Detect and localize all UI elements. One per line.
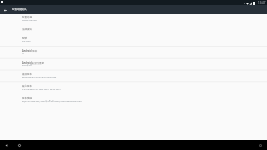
staticText: g845-00046-210127-B-7169123456 [22,76,57,79]
button[interactable]: Screenshot [257,142,263,148]
staticText: RQ2A.210405.005, 2021年4月5日 build, user-r… [22,100,82,103]
button[interactable]: 裝置名稱 [0,14,267,26]
staticText: SM-T720 [22,40,31,43]
button[interactable]: Back [2,7,8,13]
button[interactable]: 法律資訊 [0,26,267,35]
staticText: Galaxy Tab S5e [22,19,37,22]
button[interactable]: 核心版本 [0,83,267,95]
staticText: Android 版本 [22,49,38,52]
button[interactable]: 型號 [0,35,267,47]
button[interactable]: Android 版本 [0,47,267,59]
staticText: 裝置相關資訊 [12,8,27,11]
staticText: 11 [22,52,25,55]
button[interactable]: 版本號碼 [0,95,267,107]
button[interactable]: Home [16,142,23,149]
button[interactable]: Android安全性更新 [0,59,267,71]
button[interactable]: 基頻版本 [0,71,267,83]
button[interactable]: Back [3,142,10,149]
staticText: 基頻版本 [22,73,32,76]
staticText: 型號 [22,37,27,40]
staticText: 4.9.218-perf+ #1 Mon Mar 1 03:42 2021 [22,88,61,91]
staticText: 13:47 [258,1,266,5]
staticText: 核心版本 [22,85,32,88]
staticText: 裝置名稱 [22,16,32,19]
staticText: 2021年4月 [22,64,33,67]
staticText: Android安全性更新 [22,61,45,64]
staticText: 法律資訊 [22,28,32,31]
staticText: 版本號碼 [22,97,32,100]
